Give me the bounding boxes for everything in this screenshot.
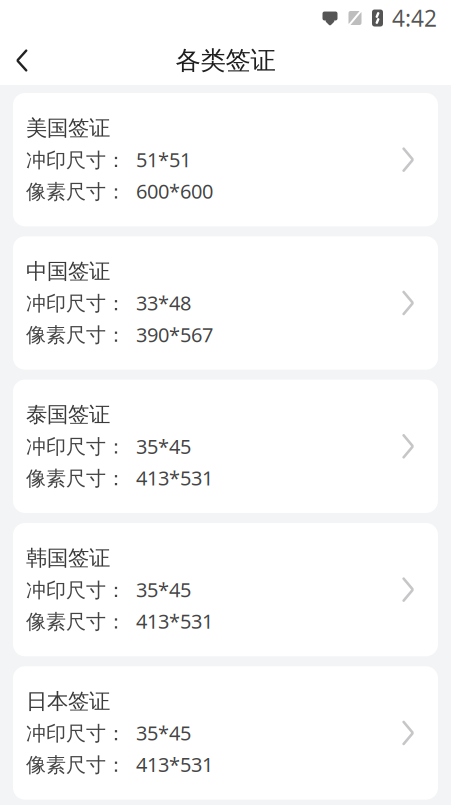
staticText: 冲印尺寸： 33*48 (26, 289, 191, 316)
button[interactable]: 泰国签证 (13, 380, 438, 513)
staticText: 美国签证 (26, 115, 110, 141)
staticText: 中国签证 (26, 258, 110, 284)
staticText: 像素尺寸： 390*567 (26, 321, 213, 348)
staticText: 韩国签证 (26, 545, 110, 571)
staticText: 像素尺寸： 413*531 (26, 464, 213, 491)
staticText: 泰国签证 (26, 402, 110, 428)
staticText: 冲印尺寸： 35*45 (26, 433, 191, 459)
button[interactable]: 返回 (0, 38, 44, 82)
staticText: 冲印尺寸： 51*51 (26, 146, 191, 173)
button[interactable]: 日本签证 (13, 666, 438, 800)
staticText: 像素尺寸： 600*600 (26, 178, 213, 204)
button[interactable]: 韩国签证 (13, 523, 438, 656)
button[interactable]: 美国签证 (13, 93, 438, 226)
staticText: 4:42 (392, 3, 437, 33)
staticText: 冲印尺寸： 35*45 (26, 576, 191, 603)
button[interactable]: 中国签证 (13, 236, 438, 370)
staticText: 日本签证 (26, 688, 110, 714)
staticText: 像素尺寸： 413*531 (26, 608, 213, 634)
staticText: 像素尺寸： 413*531 (26, 751, 213, 778)
staticText: 冲印尺寸： 35*45 (26, 719, 191, 746)
staticText: 各类签证 (175, 45, 275, 76)
